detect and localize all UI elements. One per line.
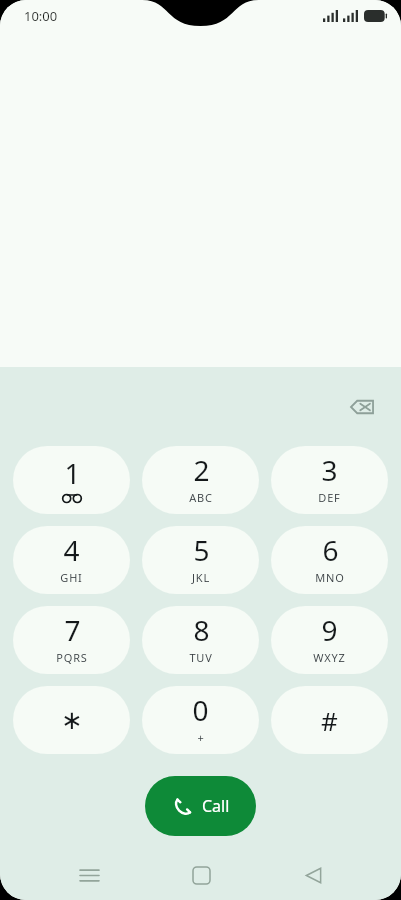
button[interactable]: #	[271, 686, 388, 754]
staticText: 7	[64, 611, 81, 649]
staticText: #	[321, 703, 338, 738]
button[interactable]: 0	[142, 686, 259, 754]
staticText: 6	[322, 531, 339, 569]
button[interactable]: 7	[13, 606, 130, 674]
staticText: MNO	[315, 570, 345, 585]
staticText: GHI	[60, 570, 83, 585]
staticText: TUV	[189, 650, 213, 665]
staticText: DEF	[318, 490, 341, 505]
staticText: 8	[193, 611, 210, 649]
staticText: 10:00	[24, 7, 58, 25]
staticText: 9	[321, 611, 338, 649]
button[interactable]: 4	[13, 526, 130, 594]
button[interactable]: Recent apps	[65, 851, 113, 899]
button[interactable]: 5	[142, 526, 259, 594]
staticText: Call	[202, 795, 230, 817]
staticText: 1	[64, 454, 81, 492]
button[interactable]: ∗	[13, 686, 130, 754]
staticText: 0	[192, 691, 209, 729]
staticText: 2	[193, 451, 210, 489]
button[interactable]: 6	[271, 526, 388, 594]
button[interactable]: 9	[271, 606, 388, 674]
staticText: ABC	[189, 490, 213, 505]
staticText: WXYZ	[313, 650, 346, 665]
button[interactable]: Backspace	[339, 384, 385, 430]
button[interactable]: Back	[289, 851, 337, 899]
staticText: 5	[193, 531, 210, 569]
button[interactable]: Home	[177, 851, 225, 899]
staticText: PQRS	[56, 650, 88, 665]
button[interactable]: 8	[142, 606, 259, 674]
staticText: 3	[321, 451, 338, 489]
staticText: JKL	[192, 570, 210, 585]
staticText: 4	[63, 531, 80, 569]
button[interactable]: 3	[271, 446, 388, 514]
button[interactable]: 1	[13, 446, 130, 514]
button[interactable]: Call	[145, 776, 256, 836]
button[interactable]: 2	[142, 446, 259, 514]
staticText: +	[197, 730, 205, 745]
staticText: ∗	[61, 705, 83, 735]
